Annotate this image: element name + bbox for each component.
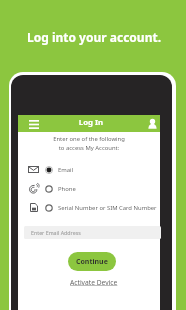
- button[interactable]: Serial Number or SIM Card Number: [28, 198, 157, 217]
- button[interactable]: Account: [142, 115, 163, 132]
- staticText: Phone: [58, 185, 76, 193]
- staticText: Log into your account.: [1, 29, 186, 45]
- staticText: Enter one of the following to access My …: [18, 135, 160, 152]
- staticText: Email: [58, 166, 74, 174]
- staticText: Log In: [20, 117, 162, 128]
- staticText: Enter Email Address: [31, 229, 81, 236]
- staticText: Activate Device: [70, 278, 118, 287]
- button[interactable]: Email: [28, 160, 74, 179]
- button[interactable]: Activate Device: [24, 278, 164, 287]
- staticText: Continue: [76, 257, 108, 267]
- button[interactable]: Phone: [28, 179, 76, 198]
- staticText: Serial Number or SIM Card Number: [58, 204, 157, 212]
- button[interactable]: Menu: [24, 116, 44, 133]
- button[interactable]: Continue: [68, 252, 116, 271]
